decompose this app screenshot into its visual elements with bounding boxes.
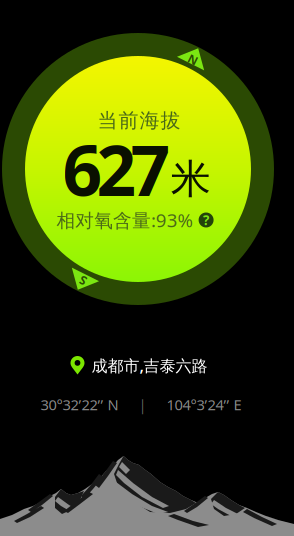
staticText: 成都市,吉泰六路 bbox=[91, 355, 207, 376]
staticText: | bbox=[138, 395, 146, 414]
button[interactable]: 成都市,吉泰六路 bbox=[68, 355, 209, 376]
staticText: 相对氧含量:93% bbox=[56, 208, 194, 232]
staticText: S bbox=[79, 273, 86, 288]
staticText: N bbox=[188, 51, 198, 67]
staticText: 30°32’22’’ N bbox=[40, 395, 118, 414]
button[interactable]: About relative oxygen level bbox=[199, 212, 214, 227]
staticText: 104°3’24’’ E bbox=[166, 395, 241, 414]
staticText: 当前海拔 bbox=[97, 108, 180, 133]
staticText: 米 bbox=[171, 155, 211, 204]
staticText: 627 bbox=[62, 123, 170, 215]
staticText: ? bbox=[203, 211, 209, 229]
